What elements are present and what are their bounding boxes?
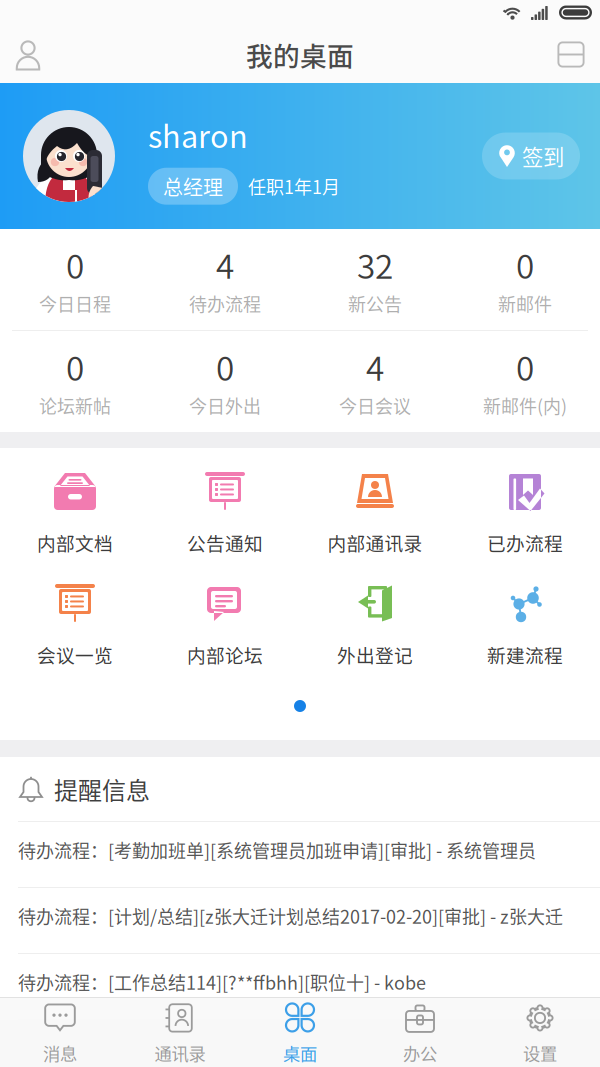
- staticText: 待办流程：[工作总结114][?**ffbhh][职位十] - kobe: [18, 969, 426, 995]
- staticText: 办公: [403, 1040, 437, 1066]
- staticText: 待办流程: [189, 290, 261, 316]
- staticText: 4: [216, 240, 234, 288]
- staticText: 消息: [43, 1040, 77, 1066]
- button[interactable]: 4: [150, 229, 300, 330]
- staticText: 总经理: [163, 172, 223, 201]
- staticText: 内部文档: [37, 529, 113, 556]
- button[interactable]: 公告通知: [150, 448, 300, 560]
- button[interactable]: 设置: [480, 998, 600, 1067]
- staticText: sharon: [148, 112, 248, 157]
- staticText: 0: [216, 342, 234, 390]
- button[interactable]: 已办流程: [450, 448, 600, 560]
- button[interactable]: 待办流程：[计划/总结][z张大迁计划总结2017-02-20][审批] - z…: [0, 888, 600, 954]
- staticText: 内部论坛: [187, 641, 263, 668]
- button[interactable]: 通讯录: [120, 998, 240, 1067]
- staticText: 0: [66, 342, 84, 390]
- button[interactable]: 待办流程：[工作总结114][?**ffbhh][职位十] - kobe: [0, 954, 600, 1020]
- staticText: 待办流程：[考勤加班单][系统管理员加班申请][审批] - 系统管理员: [18, 837, 536, 863]
- staticText: 任职1年1月: [248, 173, 340, 199]
- staticText: 新邮件(内): [483, 392, 567, 418]
- staticText: 今日会议: [339, 392, 411, 418]
- button[interactable]: 桌面: [240, 998, 360, 1067]
- staticText: 4: [366, 342, 384, 390]
- button[interactable]: 外出登记: [300, 560, 450, 672]
- staticText: 我的桌面: [246, 35, 354, 74]
- staticText: 已办流程: [487, 529, 563, 556]
- staticText: 0: [66, 240, 84, 288]
- staticText: 新邮件: [498, 290, 552, 316]
- button[interactable]: 内部文档: [0, 448, 150, 560]
- button[interactable]: 签到: [482, 133, 580, 179]
- staticText: 待办流程：[计划/总结][z张大迁计划总结2017-02-20][审批] - z…: [18, 903, 563, 929]
- staticText: 设置: [523, 1040, 557, 1066]
- button[interactable]: 会议一览: [0, 560, 150, 672]
- button[interactable]: Profile: [0, 26, 56, 83]
- staticText: 0: [516, 240, 534, 288]
- button[interactable]: 办公: [360, 998, 480, 1067]
- button[interactable]: 0: [0, 331, 150, 432]
- staticText: 提醒信息: [54, 772, 150, 806]
- button[interactable]: 4: [300, 331, 450, 432]
- button[interactable]: 待办流程：[考勤加班单][系统管理员加班申请][审批] - 系统管理员: [0, 822, 600, 888]
- button[interactable]: 32: [300, 229, 450, 330]
- staticText: 桌面: [283, 1040, 317, 1066]
- button[interactable]: Layout options: [542, 26, 600, 83]
- button[interactable]: 0: [0, 229, 150, 330]
- button[interactable]: 内部论坛: [150, 560, 300, 672]
- staticText: 通讯录: [154, 1040, 205, 1066]
- button[interactable]: 新建流程: [450, 560, 600, 672]
- staticText: 内部通讯录: [327, 529, 422, 556]
- staticText: 32: [357, 240, 393, 288]
- staticText: 公告通知: [187, 529, 263, 556]
- button[interactable]: 消息: [0, 998, 120, 1067]
- button[interactable]: 0: [450, 331, 600, 432]
- button[interactable]: 内部通讯录: [300, 448, 450, 560]
- staticText: 论坛新帖: [39, 392, 111, 418]
- staticText: 外出登记: [337, 641, 413, 668]
- staticText: 新建流程: [487, 641, 563, 668]
- staticText: 今日日程: [39, 290, 111, 316]
- staticText: 新公告: [348, 290, 402, 316]
- staticText: 0: [516, 342, 534, 390]
- button[interactable]: 0: [450, 229, 600, 330]
- staticText: 会议一览: [37, 641, 113, 668]
- button[interactable]: 0: [150, 331, 300, 432]
- staticText: 今日外出: [189, 392, 261, 418]
- staticText: 签到: [522, 141, 564, 171]
